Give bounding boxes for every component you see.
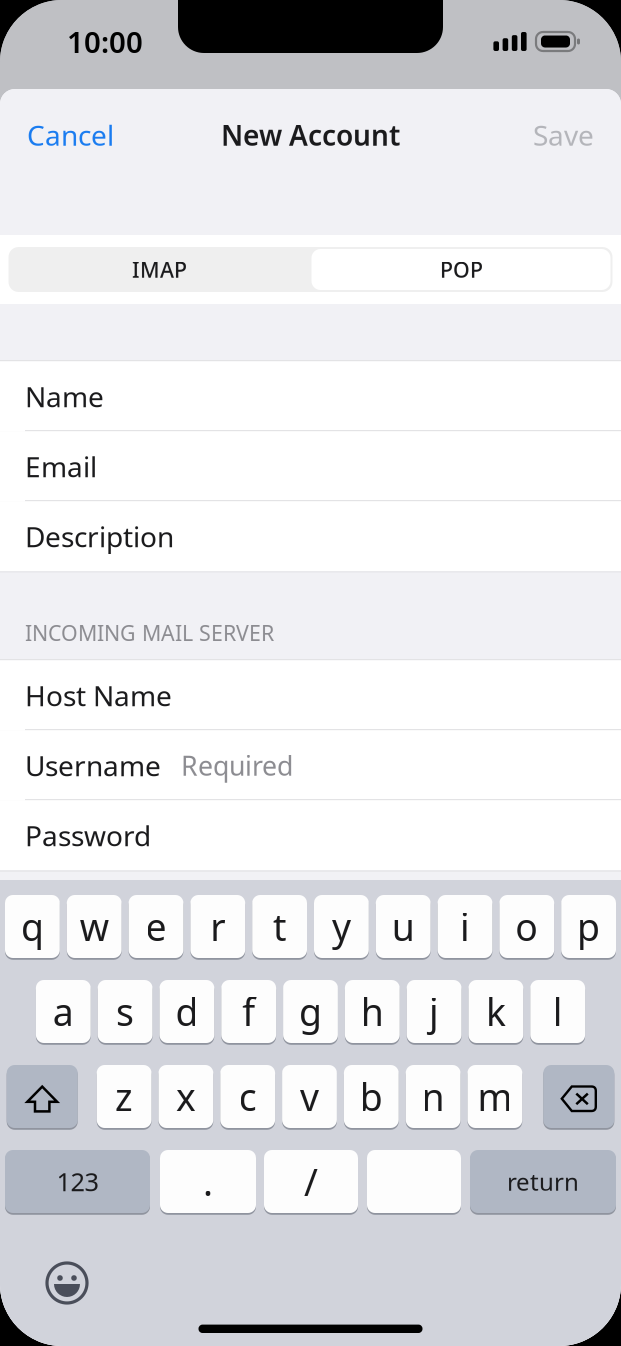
button[interactable]: h [345, 979, 400, 1044]
staticText: Password [25, 817, 151, 854]
staticText: c [239, 1072, 257, 1121]
staticText: b [360, 1072, 383, 1121]
button[interactable]: Save [517, 107, 621, 163]
staticText: k [486, 987, 506, 1036]
button[interactable]: Shift [7, 1064, 78, 1129]
button[interactable]: Name [0, 361, 621, 431]
staticText: IMAP [132, 255, 187, 284]
staticText: / [304, 1157, 318, 1206]
button[interactable]: b [344, 1064, 399, 1129]
staticText: Cancel [27, 116, 114, 154]
button[interactable]: d [159, 979, 214, 1044]
staticText: f [242, 987, 255, 1036]
button[interactable]: Description [0, 501, 621, 571]
button[interactable]: Password [0, 800, 621, 870]
button[interactable]: t [252, 894, 307, 959]
button[interactable]: i [438, 894, 492, 959]
button[interactable]: y [314, 894, 369, 959]
button[interactable]: IMAP [8, 247, 310, 292]
button[interactable]: p [561, 894, 616, 959]
staticText: y [332, 902, 351, 951]
staticText: d [175, 987, 198, 1036]
button[interactable]: r [190, 894, 245, 959]
staticText: w [80, 902, 109, 951]
staticText: l [553, 987, 563, 1036]
staticText: a [53, 987, 74, 1036]
staticText: Host Name [25, 677, 172, 714]
staticText: s [116, 987, 134, 1036]
button[interactable]: o [499, 894, 554, 959]
button[interactable]: u [376, 894, 431, 959]
staticText: i [460, 902, 470, 951]
button[interactable]: c [220, 1064, 275, 1129]
button[interactable]: / [264, 1149, 358, 1214]
button[interactable] [367, 1149, 461, 1214]
staticText: . [203, 1157, 213, 1206]
staticText: m [477, 1072, 512, 1121]
staticText: t [273, 902, 286, 951]
button[interactable]: q [5, 894, 60, 959]
staticText: Name [25, 378, 104, 415]
staticText: x [176, 1072, 196, 1121]
staticText: return [507, 1166, 579, 1197]
staticText: e [145, 902, 166, 951]
button[interactable]: Delete [543, 1064, 614, 1129]
button[interactable]: 123 [5, 1149, 150, 1214]
button[interactable]: k [468, 979, 523, 1044]
button[interactable]: POP [310, 247, 612, 292]
button[interactable]: x [158, 1064, 213, 1129]
staticText: j [429, 987, 439, 1036]
staticText: g [299, 987, 322, 1036]
staticText: Description [25, 518, 174, 555]
button[interactable]: Host Name [0, 660, 621, 730]
staticText: INCOMING MAIL SERVER [25, 619, 274, 647]
button[interactable]: v [282, 1064, 337, 1129]
button[interactable]: . [160, 1149, 256, 1214]
staticText: r [210, 902, 225, 951]
staticText: o [515, 902, 538, 951]
button[interactable]: j [407, 979, 461, 1044]
button[interactable]: e [129, 894, 183, 959]
staticText: q [21, 902, 44, 951]
button[interactable]: g [283, 979, 338, 1044]
button[interactable]: s [98, 979, 152, 1044]
staticText: p [577, 902, 600, 951]
button[interactable]: return [470, 1149, 616, 1214]
staticText: POP [440, 255, 483, 284]
staticText: z [115, 1072, 133, 1121]
staticText: 123 [56, 1165, 98, 1198]
staticText: v [300, 1072, 319, 1121]
staticText: h [361, 987, 384, 1036]
button[interactable]: w [67, 894, 122, 959]
button[interactable]: l [530, 979, 585, 1044]
button[interactable]: Cancel [0, 107, 130, 163]
staticText: New Account [221, 116, 400, 154]
button[interactable]: z [97, 1064, 151, 1129]
staticText: u [392, 902, 415, 951]
button[interactable]: Email [0, 431, 621, 501]
staticText: Save [533, 116, 594, 154]
button[interactable]: Username [0, 730, 621, 800]
button[interactable]: f [221, 979, 276, 1044]
staticText: n [422, 1072, 445, 1121]
button[interactable]: n [406, 1064, 460, 1129]
button[interactable]: m [467, 1064, 522, 1129]
button[interactable]: a [36, 979, 91, 1044]
staticText: Required [181, 748, 293, 783]
staticText: Username [25, 747, 161, 784]
staticText: 10:00 [67, 22, 143, 61]
button[interactable]: Emoji [43, 1259, 91, 1307]
staticText: Email [25, 448, 97, 485]
